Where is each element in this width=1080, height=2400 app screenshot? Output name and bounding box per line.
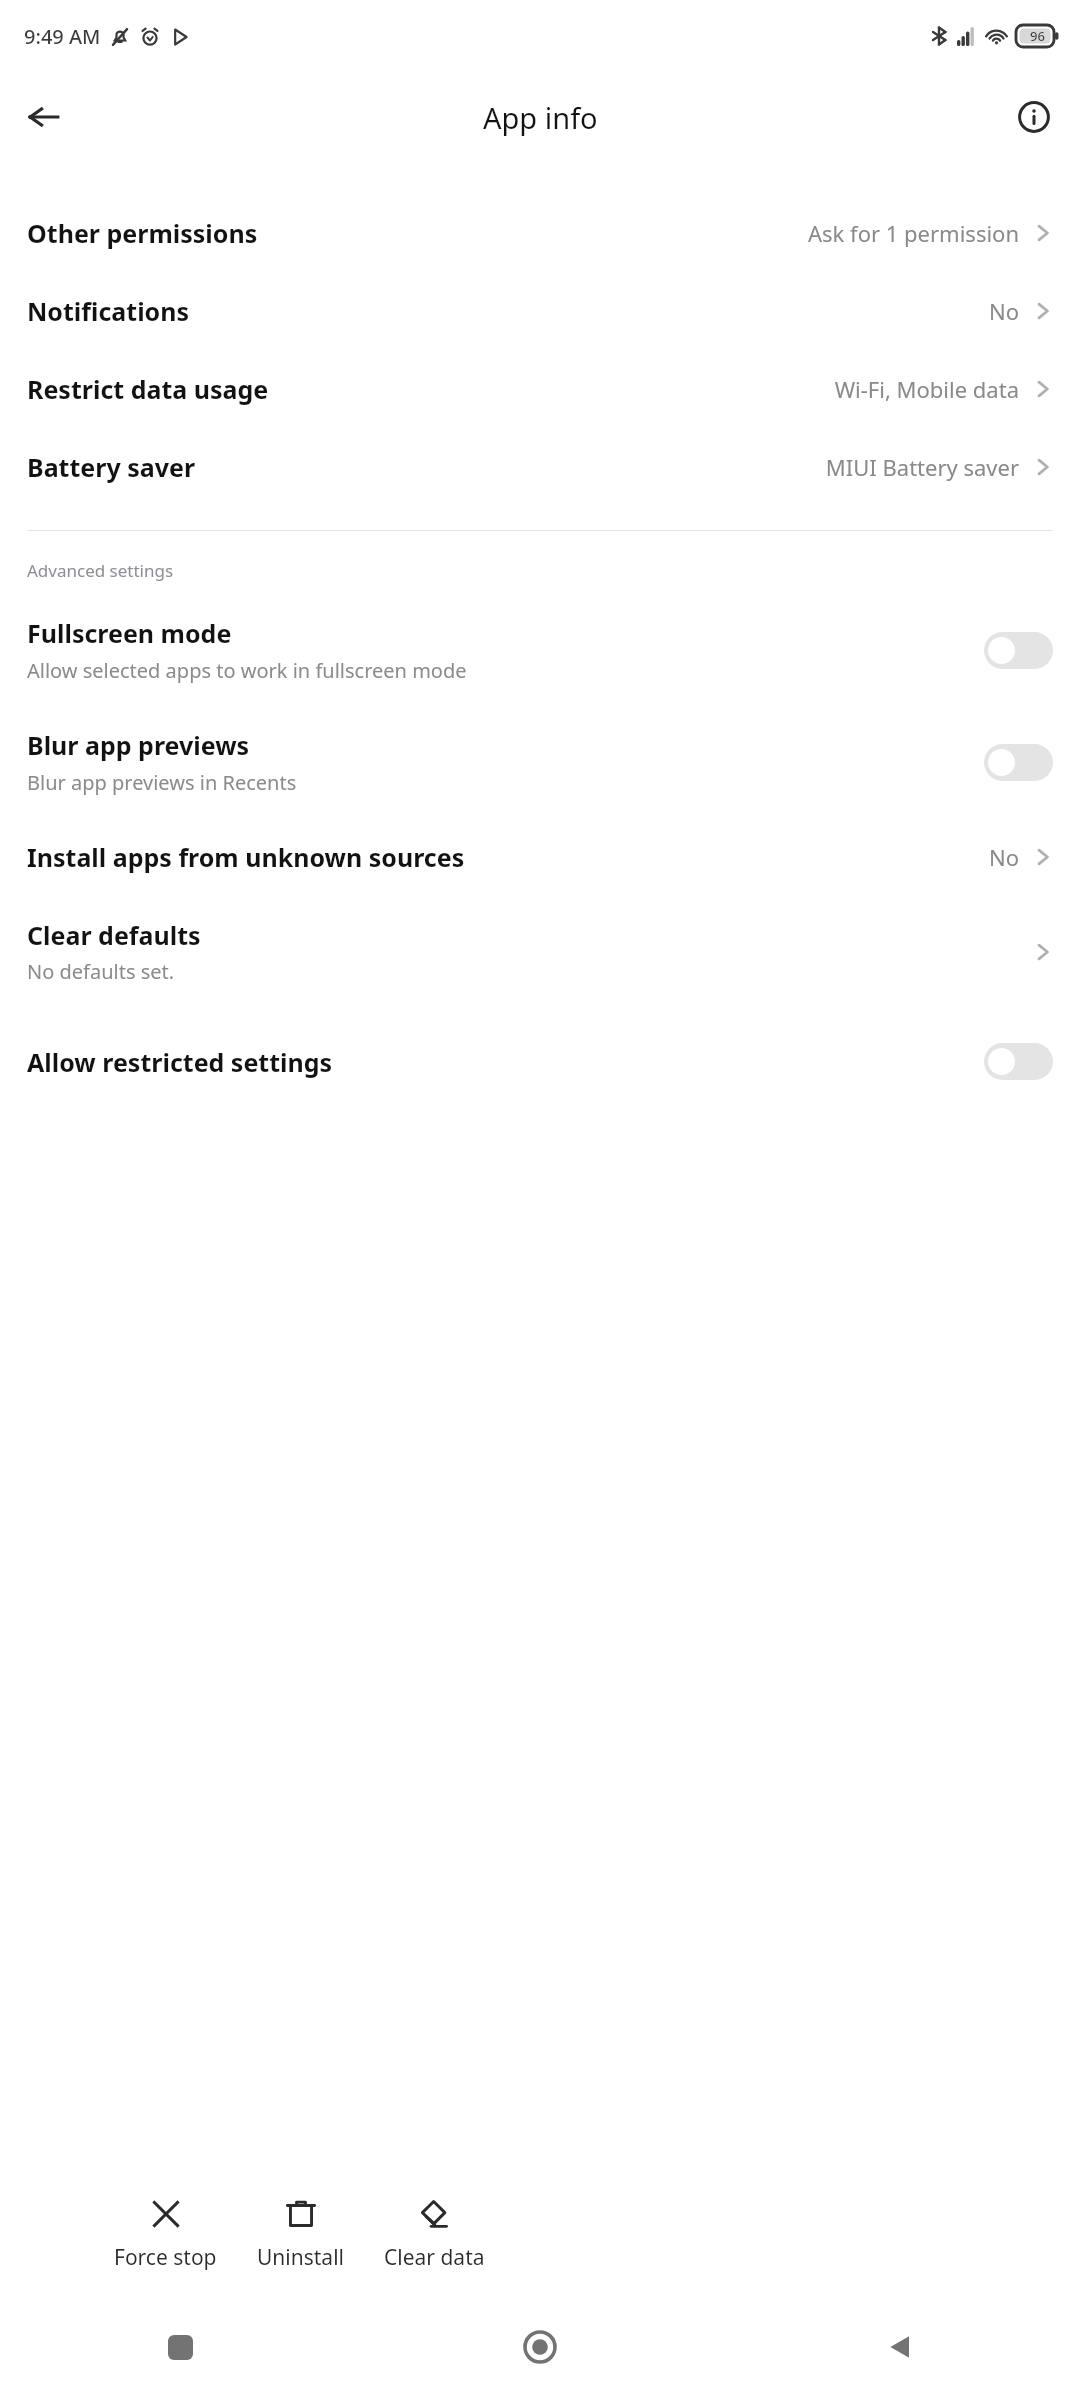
button[interactable]: Battery saver <box>0 428 1080 506</box>
staticText: Wi-Fi, Mobile data <box>834 374 1019 404</box>
button[interactable]: Back <box>872 2319 928 2375</box>
button[interactable]: Notifications <box>0 272 1080 350</box>
staticText: Restrict data usage <box>27 372 269 406</box>
staticText: Advanced settings <box>27 559 174 582</box>
button[interactable]: Home <box>512 2319 568 2375</box>
staticText: Install apps from unknown sources <box>27 840 465 874</box>
button[interactable]: Fullscreen mode <box>0 594 1080 706</box>
staticText: Force stop <box>114 2243 217 2272</box>
button[interactable]: Uninstall <box>251 2191 350 2278</box>
staticText: Allow selected apps to work in fullscree… <box>27 657 467 684</box>
staticText: Fullscreen mode <box>27 616 232 650</box>
staticText: Blur app previews <box>27 728 250 762</box>
staticText: 96 <box>1030 27 1045 45</box>
staticText: Clear data <box>384 2243 485 2272</box>
staticText: MIUI Battery saver <box>825 452 1019 482</box>
staticText: Battery saver <box>27 450 196 484</box>
staticText: No defaults set. <box>27 958 175 985</box>
button[interactable]: Toggle <box>984 632 1053 669</box>
staticText: No <box>988 842 1019 872</box>
staticText: Allow restricted settings <box>27 1045 333 1079</box>
button[interactable]: Recents <box>152 2319 208 2375</box>
staticText: Other permissions <box>27 216 258 250</box>
staticText: Blur app previews in Recents <box>27 769 297 796</box>
staticText: No <box>988 296 1019 326</box>
button[interactable]: App details <box>1006 89 1062 145</box>
button[interactable]: Allow restricted settings <box>0 1021 1080 1102</box>
button[interactable]: Restrict data usage <box>0 350 1080 428</box>
button[interactable]: Install apps from unknown sources <box>0 818 1080 896</box>
staticText: Notifications <box>27 294 190 328</box>
button[interactable]: Toggle <box>984 744 1053 781</box>
staticText: 9:49 AM <box>24 23 101 50</box>
button[interactable]: Other permissions <box>0 194 1080 272</box>
staticText: Uninstall <box>257 2243 344 2272</box>
staticText: Ask for 1 permission <box>808 218 1019 248</box>
staticText: Clear defaults <box>27 918 201 952</box>
button[interactable]: Clear defaults <box>0 896 1080 1007</box>
button[interactable]: Toggle <box>984 1043 1053 1080</box>
staticText: App info <box>483 98 598 137</box>
button[interactable]: Clear data <box>378 2191 491 2278</box>
button[interactable]: Back <box>16 89 72 145</box>
button[interactable]: Force stop <box>108 2191 223 2278</box>
button[interactable]: Blur app previews <box>0 706 1080 818</box>
